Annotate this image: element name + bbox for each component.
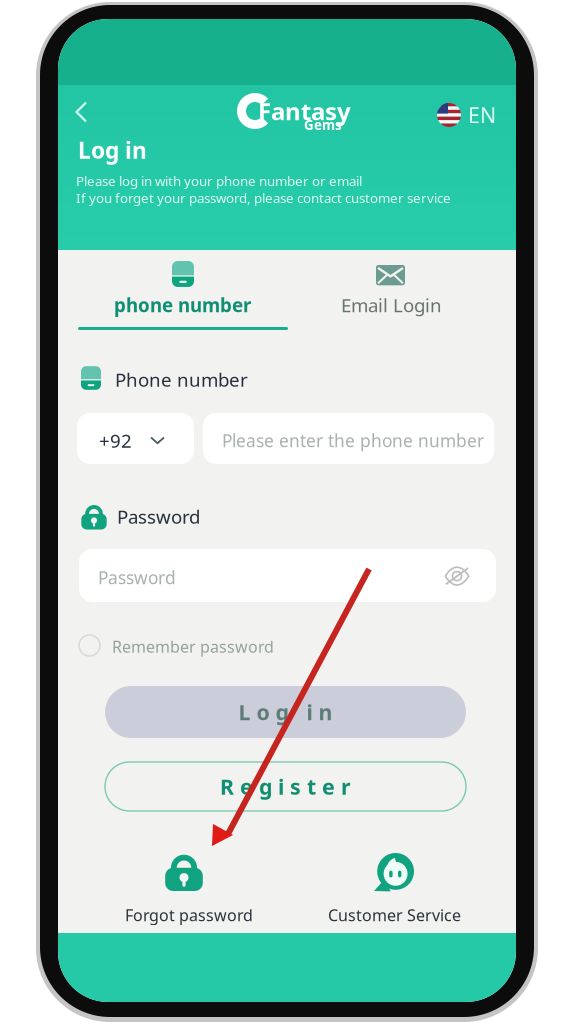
button[interactable]: Password — [79, 549, 496, 602]
staticText: Fantasy — [258, 95, 351, 127]
staticText: Please log in with your phone number or … — [76, 172, 362, 190]
staticText: Remember password — [112, 636, 274, 657]
staticText: Customer Service — [328, 904, 461, 926]
staticText: Phone number — [115, 367, 248, 392]
button[interactable]: +92 — [77, 413, 194, 464]
button[interactable]: Forgot password — [118, 845, 268, 929]
staticText: Password — [98, 566, 176, 589]
button[interactable]: Email Login — [287, 250, 516, 332]
staticText: EN — [468, 101, 496, 129]
button[interactable]: Language English — [438, 99, 510, 131]
button[interactable]: Customer Service — [326, 845, 481, 929]
button[interactable]: Remember password — [77, 627, 337, 663]
button[interactable]: R e g i s t e r — [105, 762, 466, 811]
staticText: +92 — [99, 428, 132, 453]
staticText: Gems — [304, 116, 342, 134]
staticText: phone number — [114, 293, 251, 317]
staticText: Log in — [78, 135, 147, 165]
staticText: R e g i s t e r — [220, 772, 351, 801]
staticText: If you forget your password, please cont… — [76, 189, 451, 207]
staticText: Email Login — [341, 293, 442, 317]
button[interactable]: phone number — [58, 250, 287, 332]
button[interactable]: L o g i n — [105, 686, 466, 738]
staticText: L o g i n — [238, 698, 332, 726]
staticText: Password — [117, 504, 200, 529]
staticText: Forgot password — [125, 904, 253, 926]
staticText: Please enter the phone number — [222, 429, 484, 452]
button[interactable]: Back — [58, 83, 102, 127]
button[interactable]: Please enter the phone number — [203, 413, 494, 464]
